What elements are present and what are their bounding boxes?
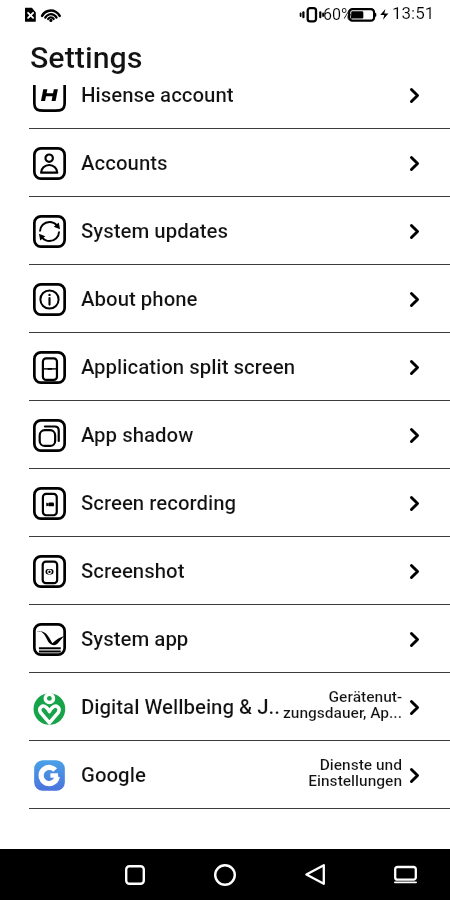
staticText: Digital Wellbeing & J..	[81, 695, 280, 719]
staticText: Screenshot	[81, 559, 185, 583]
button[interactable]: Google	[0, 741, 450, 809]
button[interactable]: Hisense account	[0, 85, 450, 129]
button[interactable]: Hide navigation bar	[375, 849, 435, 900]
staticText: 13:51	[392, 3, 435, 23]
button[interactable]: Digital Wellbeing & J..	[0, 673, 450, 741]
staticText: Screen recording	[81, 491, 237, 515]
staticText: Gerätenut- zungsdauer, Ap...	[262, 688, 402, 722]
staticText: Accounts	[81, 151, 168, 175]
button[interactable]: Application split screen	[0, 333, 450, 401]
button[interactable]: Home	[195, 849, 255, 900]
staticText: System app	[81, 627, 189, 651]
staticText: System updates	[81, 219, 228, 243]
button[interactable]: Screen recording	[0, 469, 450, 537]
staticText: Settings	[30, 40, 143, 76]
staticText: About phone	[81, 287, 198, 311]
button[interactable]: System app	[0, 605, 450, 673]
button[interactable]: Screenshot	[0, 537, 450, 605]
button[interactable]: Back	[285, 849, 345, 900]
staticText: Dienste und Einstellungen	[262, 756, 402, 790]
button[interactable]: App shadow	[0, 401, 450, 469]
staticText: Application split screen	[81, 355, 295, 379]
button[interactable]: About phone	[0, 265, 450, 333]
button[interactable]: Recents	[105, 849, 165, 900]
staticText: 60%	[323, 5, 353, 24]
button[interactable]: System updates	[0, 197, 450, 265]
staticText: Hisense account	[81, 85, 234, 107]
staticText: Google	[81, 763, 146, 787]
staticText: App shadow	[81, 423, 194, 447]
button[interactable]: Accounts	[0, 129, 450, 197]
